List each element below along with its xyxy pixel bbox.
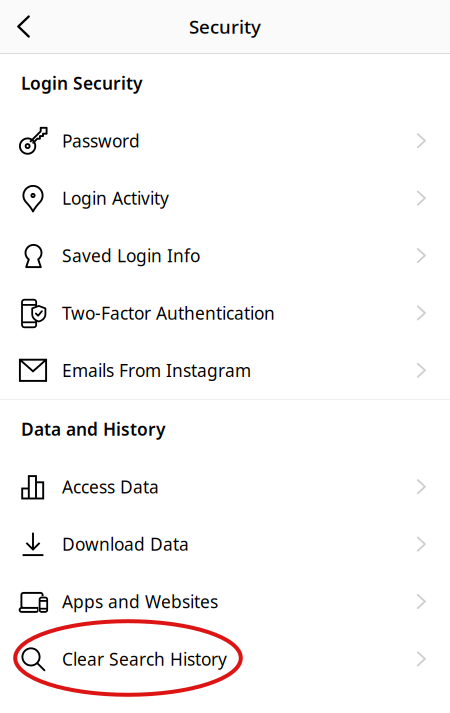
staticText: Apps and Websites: [62, 590, 218, 613]
button[interactable]: Access Data: [0, 458, 450, 515]
button[interactable]: Apps and Websites: [0, 573, 450, 630]
staticText: Security: [189, 14, 261, 39]
staticText: Download Data: [62, 533, 189, 556]
staticText: Data and History: [21, 417, 165, 440]
button[interactable]: Clear Search History: [0, 630, 450, 688]
staticText: Login Activity: [62, 187, 169, 210]
staticText: Two-Factor Authentication: [62, 301, 275, 324]
button[interactable]: Emails From Instagram: [0, 342, 450, 399]
staticText: Clear Search History: [62, 647, 227, 670]
button[interactable]: Two-Factor Authentication: [0, 284, 450, 342]
button[interactable]: Back: [0, 0, 47, 53]
staticText: Emails From Instagram: [62, 359, 251, 382]
button[interactable]: Login Activity: [0, 169, 450, 227]
button[interactable]: Saved Login Info: [0, 227, 450, 284]
button[interactable]: Download Data: [0, 515, 450, 573]
staticText: Password: [62, 129, 140, 152]
staticText: Access Data: [62, 475, 159, 498]
staticText: Login Security: [21, 71, 142, 94]
staticText: Saved Login Info: [62, 244, 200, 267]
button[interactable]: Password: [0, 112, 450, 169]
